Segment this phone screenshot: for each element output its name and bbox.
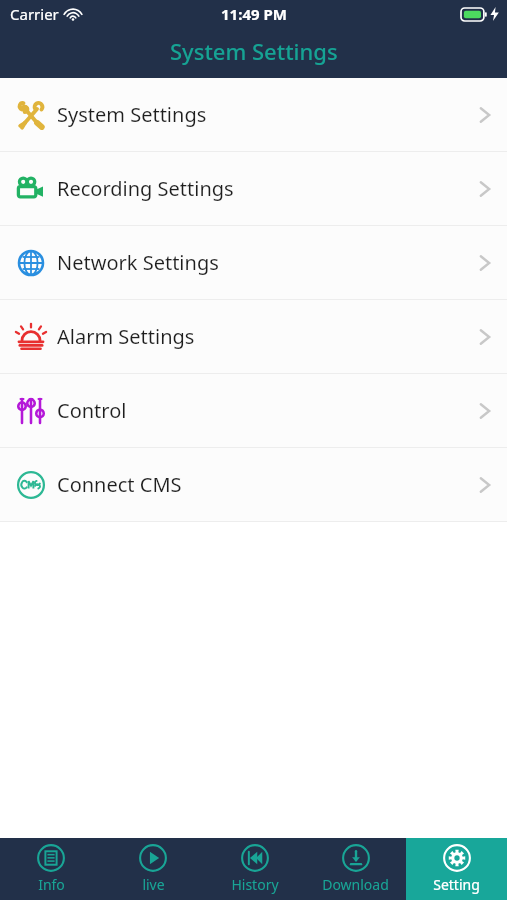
staticText: 11:49 PM [221, 4, 287, 24]
staticText: Download [322, 875, 389, 894]
button[interactable]: Control [0, 374, 507, 447]
staticText: Info [38, 875, 65, 894]
button[interactable]: Alarm Settings [0, 300, 507, 373]
staticText: Alarm Settings [57, 323, 195, 350]
staticText: Setting [433, 875, 480, 894]
staticText: Control [57, 397, 127, 424]
button[interactable]: Connect CMS [0, 448, 507, 521]
staticText: History [231, 875, 279, 894]
staticText: System Settings [170, 36, 338, 66]
button[interactable]: live [102, 838, 204, 900]
button[interactable]: System Settings [0, 78, 507, 151]
button[interactable]: Info [0, 838, 102, 900]
staticText: Network Settings [57, 249, 219, 276]
staticText: System Settings [57, 101, 207, 128]
button[interactable]: Network Settings [0, 226, 507, 299]
button[interactable]: Recording Settings [0, 152, 507, 225]
staticText: Carrier [10, 4, 59, 24]
button[interactable]: Download [305, 838, 406, 900]
button[interactable]: History [204, 838, 305, 900]
staticText: Recording Settings [57, 175, 234, 202]
staticText: Connect CMS [57, 471, 182, 498]
staticText: live [142, 875, 165, 894]
button[interactable]: Setting [406, 838, 507, 900]
